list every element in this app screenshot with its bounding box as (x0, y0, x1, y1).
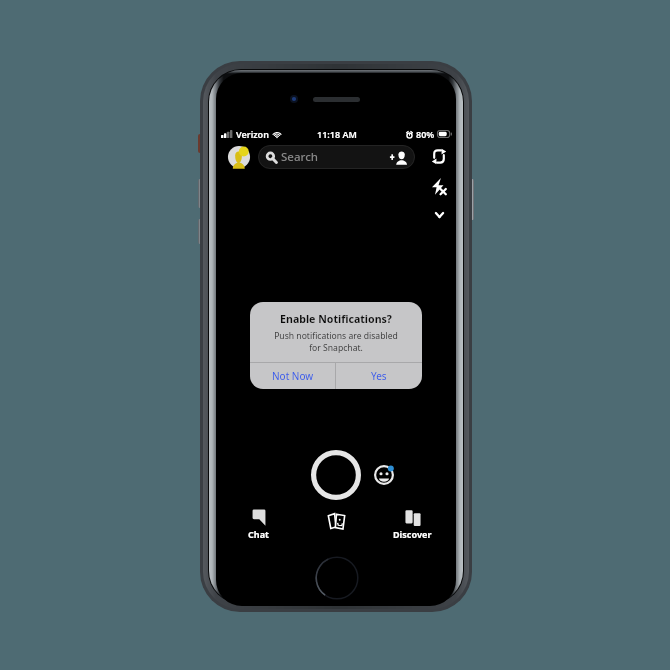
button[interactable]: Capture (311, 450, 361, 500)
staticText: Push notifications are disabled for Snap… (250, 330, 422, 353)
staticText: Yes (371, 369, 387, 383)
staticText: Discover (393, 528, 432, 539)
button[interactable]: Not Now (250, 363, 335, 389)
button[interactable]: Discover (382, 509, 442, 539)
button[interactable]: Yes (336, 363, 422, 389)
button[interactable]: Lenses (371, 462, 397, 488)
button[interactable]: Chat (228, 509, 288, 539)
staticText: Chat (248, 528, 269, 539)
button[interactable]: Flip camera (427, 144, 451, 168)
button[interactable]: Stories (322, 510, 350, 531)
button[interactable]: Add Friends (388, 146, 410, 168)
staticText: 80% (416, 128, 435, 140)
button[interactable]: Search (258, 145, 415, 169)
button[interactable]: More options (426, 202, 452, 228)
staticText: Verizon (236, 128, 269, 140)
button[interactable]: Flash off (426, 173, 452, 199)
staticText: Not Now (272, 369, 314, 383)
staticText: 11:18 AM (317, 128, 357, 140)
staticText: Enable Notifications? (250, 312, 422, 326)
staticText: Search (281, 149, 318, 165)
button[interactable]: Home (315, 556, 359, 600)
button[interactable]: Profile (227, 145, 251, 169)
